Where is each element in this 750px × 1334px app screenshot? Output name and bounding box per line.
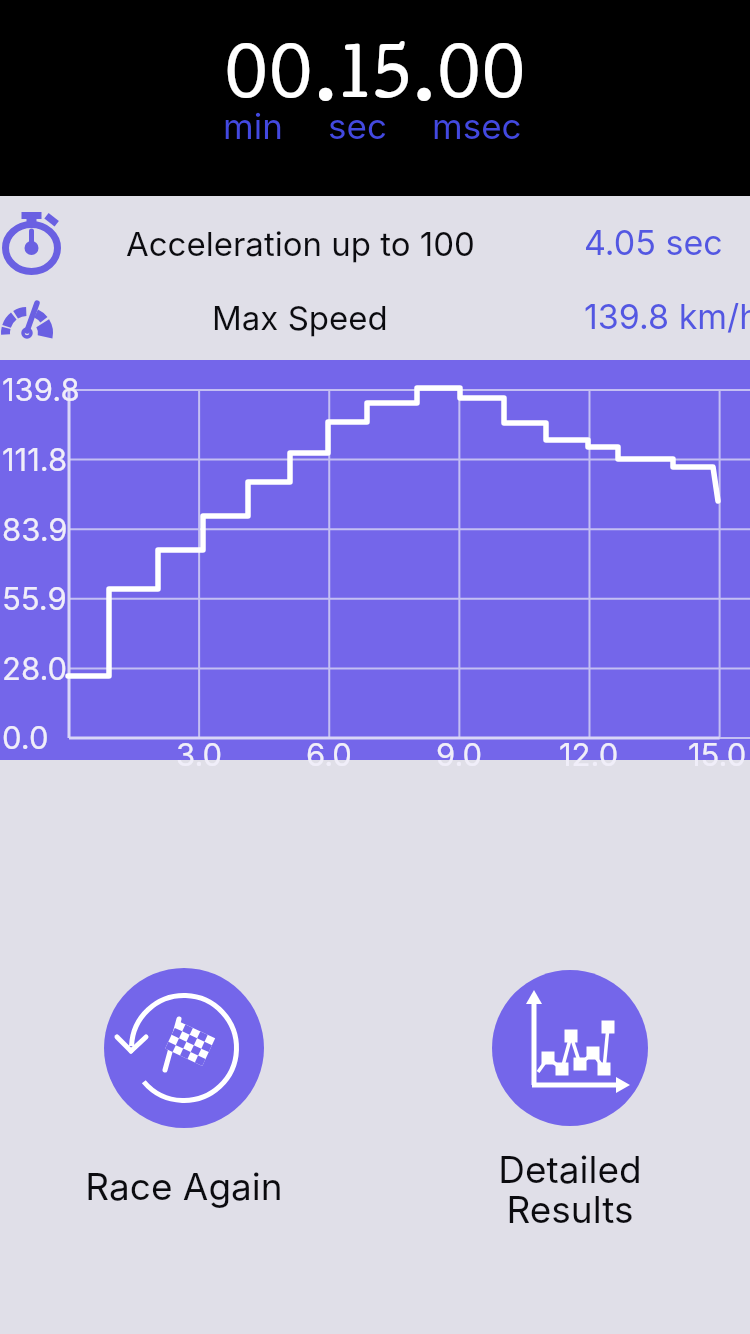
staticText: Race Again xyxy=(85,1164,283,1209)
staticText: 9.0 xyxy=(436,736,483,774)
staticText: 139.8 xyxy=(2,371,80,409)
staticText: 111.8 xyxy=(2,441,68,479)
staticText: 55.9 xyxy=(2,580,67,618)
staticText: 6.0 xyxy=(306,736,352,774)
button[interactable]: Race Again xyxy=(54,968,314,1209)
staticText: msec xyxy=(432,105,522,147)
staticText: Max Speed xyxy=(212,298,388,338)
staticText: Detailed Results xyxy=(498,1147,642,1232)
button[interactable]: Detailed Results xyxy=(470,970,670,1232)
staticText: 15.0 xyxy=(688,736,747,774)
staticText: 83.9 xyxy=(2,511,68,549)
staticText: 28.0 xyxy=(2,650,68,688)
staticText: Acceleration up to 100 xyxy=(126,224,475,264)
staticText: 12.0 xyxy=(559,736,619,774)
staticText: 0.0 xyxy=(2,719,49,757)
staticText: 4.05 sec xyxy=(584,222,723,263)
staticText: min xyxy=(223,105,283,147)
staticText: 00.15.00 xyxy=(224,29,526,112)
staticText: sec xyxy=(328,105,387,147)
staticText: 139.8 km/h xyxy=(584,296,750,337)
staticText: 3.0 xyxy=(176,736,223,774)
